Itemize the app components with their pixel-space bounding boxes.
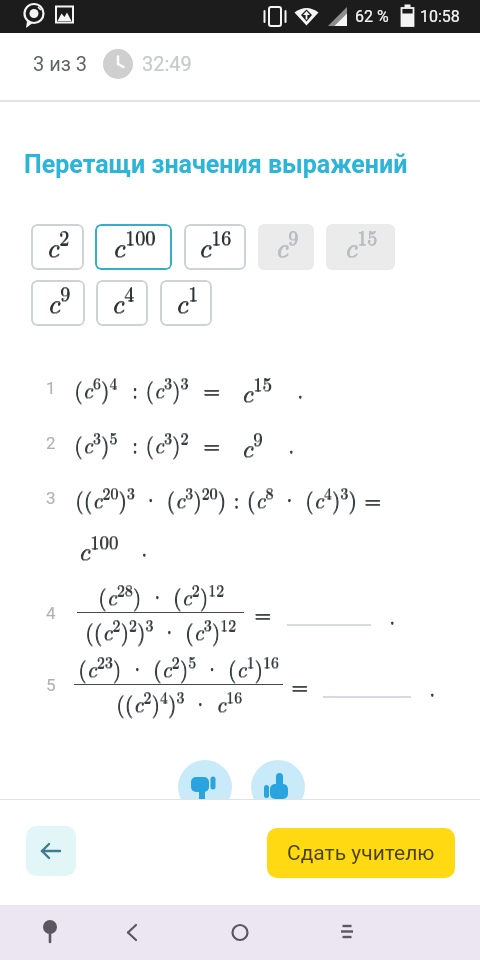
staticText: c15: [241, 370, 272, 404]
staticText: =: [292, 669, 310, 700]
staticText: (c3)5 : (c3)2 =: [74, 426, 220, 460]
button[interactable]: [106, 908, 154, 956]
staticText: 4: [46, 603, 56, 623]
staticText: c100: [78, 528, 119, 562]
staticText: =: [291, 669, 309, 700]
staticText: c16: [199, 224, 233, 265]
button[interactable]: c9: [31, 280, 85, 326]
staticText: c1: [175, 280, 198, 321]
staticText: .: [298, 373, 305, 404]
staticText: c9: [47, 280, 70, 321]
staticText: Сдать учителю: [287, 841, 435, 866]
staticText: (c23) · (c2)5 · (c1)16: [79, 650, 280, 684]
staticText: 3: [46, 488, 56, 508]
staticText: c9: [276, 224, 299, 265]
staticText: (c23) · (c2)5 · (c1)16: [78, 650, 279, 684]
staticText: c100: [112, 224, 156, 265]
staticText: c16: [198, 224, 232, 265]
staticText: ((c2)4)3 · c16: [116, 685, 242, 719]
staticText: c15: [241, 370, 272, 404]
staticText: ((c2)2)3 · (c3)12: [85, 613, 236, 647]
staticText: 32:49: [142, 52, 192, 75]
staticText: c4: [111, 280, 134, 321]
staticText: .: [288, 428, 295, 459]
staticText: .: [389, 599, 396, 630]
staticText: c100: [79, 528, 120, 562]
staticText: c16: [198, 224, 232, 265]
button[interactable]: [26, 826, 76, 876]
staticText: c9: [241, 425, 263, 459]
staticText: ((c20)3 · (c3)20) : (c8 · (c4)3) =: [75, 481, 382, 515]
staticText: c15: [345, 224, 379, 265]
button[interactable]: c1: [160, 280, 212, 326]
staticText: c100: [113, 224, 157, 265]
staticText: c9: [275, 224, 298, 265]
button[interactable]: c100: [95, 224, 172, 270]
staticText: (c28) · (c2)12: [98, 578, 224, 612]
staticText: c9: [242, 425, 264, 459]
staticText: c1: [175, 280, 198, 321]
staticText: c9: [48, 280, 71, 321]
staticText: 3 из 3: [33, 52, 88, 75]
staticText: 62 %: [355, 7, 389, 26]
staticText: =: [254, 597, 272, 628]
staticText: c2: [46, 224, 69, 265]
staticText: 2: [46, 433, 56, 453]
staticText: ((c20)3 · (c3)20) : (c8 · (c4)3) =: [75, 481, 382, 515]
staticText: (c3)5 : (c3)2 =: [75, 426, 221, 460]
staticText: c15: [242, 370, 273, 404]
staticText: ((c2)4)3 · c16: [116, 685, 242, 719]
staticText: ((c2)2)3 · (c3)12: [86, 613, 237, 647]
button[interactable]: [26, 908, 74, 956]
button[interactable]: Сдать учителю: [267, 828, 455, 878]
staticText: (c6)4 : (c3)3 =: [75, 371, 221, 405]
staticText: c15: [344, 224, 378, 265]
staticText: (c23) · (c2)5 · (c1)16: [78, 650, 279, 684]
staticText: =: [254, 597, 272, 628]
staticText: (c28) · (c2)12: [98, 578, 224, 612]
staticText: =: [291, 669, 309, 700]
staticText: c100: [78, 528, 119, 562]
button[interactable]: [323, 908, 371, 956]
staticText: c9: [47, 280, 70, 321]
staticText: .: [390, 599, 397, 630]
staticText: .: [288, 428, 295, 459]
staticText: 1: [46, 378, 56, 398]
button[interactable]: [251, 760, 305, 814]
staticText: =: [255, 597, 273, 628]
staticText: 5: [46, 675, 56, 695]
staticText: ((c20)3 · (c3)20) : (c8 · (c4)3) =: [76, 481, 383, 515]
staticText: .: [429, 671, 436, 702]
staticText: (c28) · (c2)12: [99, 578, 225, 612]
staticText: c2: [47, 224, 70, 265]
staticText: c2: [46, 224, 69, 265]
staticText: c4: [112, 280, 135, 321]
staticText: .: [389, 599, 396, 630]
button[interactable]: c9: [258, 224, 314, 270]
staticText: c15: [344, 224, 378, 265]
staticText: .: [142, 531, 149, 562]
button[interactable]: c4: [96, 280, 148, 326]
staticText: c9: [275, 224, 298, 265]
staticText: .: [141, 531, 148, 562]
staticText: (c6)4 : (c3)3 =: [74, 371, 220, 405]
staticText: .: [289, 428, 296, 459]
button[interactable]: [216, 908, 264, 956]
staticText: Перетащи значения выражений: [24, 150, 408, 179]
staticText: c9: [241, 425, 263, 459]
staticText: (c3)5 : (c3)2 =: [74, 426, 220, 460]
staticText: .: [141, 531, 148, 562]
button[interactable]: c15: [326, 224, 395, 270]
button[interactable]: c16: [184, 224, 246, 270]
staticText: c4: [111, 280, 134, 321]
staticText: c1: [176, 280, 199, 321]
staticText: .: [297, 373, 304, 404]
staticText: .: [429, 671, 436, 702]
button[interactable]: [178, 760, 232, 814]
button[interactable]: c2: [31, 224, 84, 270]
staticText: .: [297, 373, 304, 404]
staticText: ((c2)4)3 · c16: [117, 685, 243, 719]
staticText: 10:58: [420, 7, 460, 26]
staticText: ((c2)2)3 · (c3)12: [85, 613, 236, 647]
staticText: c100: [112, 224, 156, 265]
